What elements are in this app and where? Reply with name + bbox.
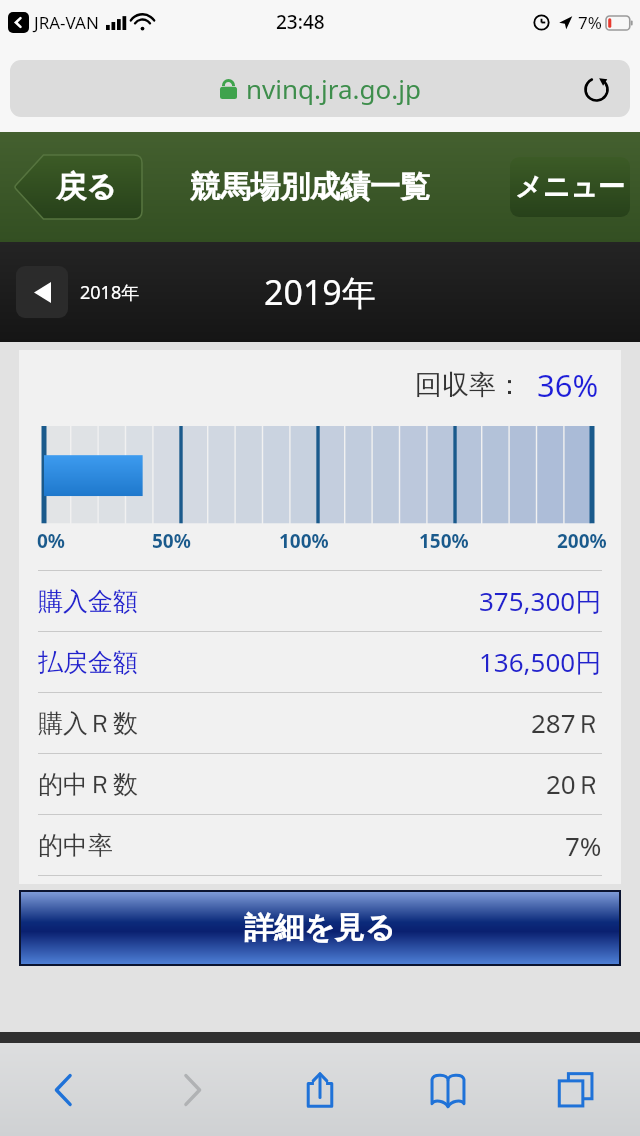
- button[interactable]: Previous year: [16, 266, 140, 318]
- button[interactable]: Bookmarks: [412, 1054, 484, 1126]
- staticText: 23:48: [276, 9, 325, 35]
- staticText: 詳細を見る: [244, 909, 396, 947]
- button[interactable]: nvinq.jra.go.jp: [10, 60, 630, 117]
- staticText: 20Ｒ: [546, 766, 602, 802]
- button[interactable]: メニュー: [510, 157, 630, 217]
- staticText: 375,300円: [479, 583, 602, 619]
- staticText: 36%: [537, 364, 599, 406]
- button[interactable]: 購入金額: [38, 571, 602, 631]
- staticText: 2018年: [80, 280, 140, 305]
- staticText: 7%: [578, 11, 602, 34]
- button[interactable]: 戻る: [14, 155, 142, 219]
- staticText: 的中率: [38, 830, 113, 861]
- staticText: 的中Ｒ数: [38, 769, 138, 800]
- staticText: 戻る: [56, 168, 117, 206]
- staticText: JRA-VAN: [34, 11, 99, 34]
- button[interactable]: Forward: [156, 1054, 228, 1126]
- staticText: 2019年: [264, 269, 376, 315]
- staticText: 200%: [557, 528, 607, 554]
- button[interactable]: 購入Ｒ数: [38, 693, 602, 753]
- button[interactable]: Reload: [578, 71, 614, 107]
- button[interactable]: 払戻金額: [38, 632, 602, 692]
- staticText: 購入Ｒ数: [38, 708, 138, 739]
- staticText: 7%: [565, 828, 602, 863]
- button[interactable]: 詳細を見る: [21, 892, 619, 964]
- button[interactable]: 的中率: [38, 815, 602, 875]
- staticText: 150%: [419, 528, 469, 554]
- staticText: 0%: [37, 528, 66, 554]
- staticText: 287Ｒ: [531, 705, 602, 741]
- staticText: 50%: [152, 528, 191, 554]
- button[interactable]: 的中Ｒ数: [38, 754, 602, 814]
- staticText: nvinq.jra.go.jp: [246, 71, 421, 106]
- other: Previous year: [16, 266, 68, 318]
- button[interactable]: Share: [284, 1054, 356, 1126]
- button[interactable]: Tabs: [540, 1054, 612, 1126]
- staticText: 136,500円: [479, 644, 602, 680]
- button[interactable]: Back: [28, 1054, 100, 1126]
- staticText: 払戻金額: [38, 647, 138, 678]
- staticText: 競馬場別成績一覧: [190, 168, 430, 206]
- staticText: 100%: [279, 528, 329, 554]
- staticText: 購入金額: [38, 586, 138, 617]
- staticText: 回収率：: [415, 368, 523, 402]
- staticText: メニュー: [515, 170, 625, 204]
